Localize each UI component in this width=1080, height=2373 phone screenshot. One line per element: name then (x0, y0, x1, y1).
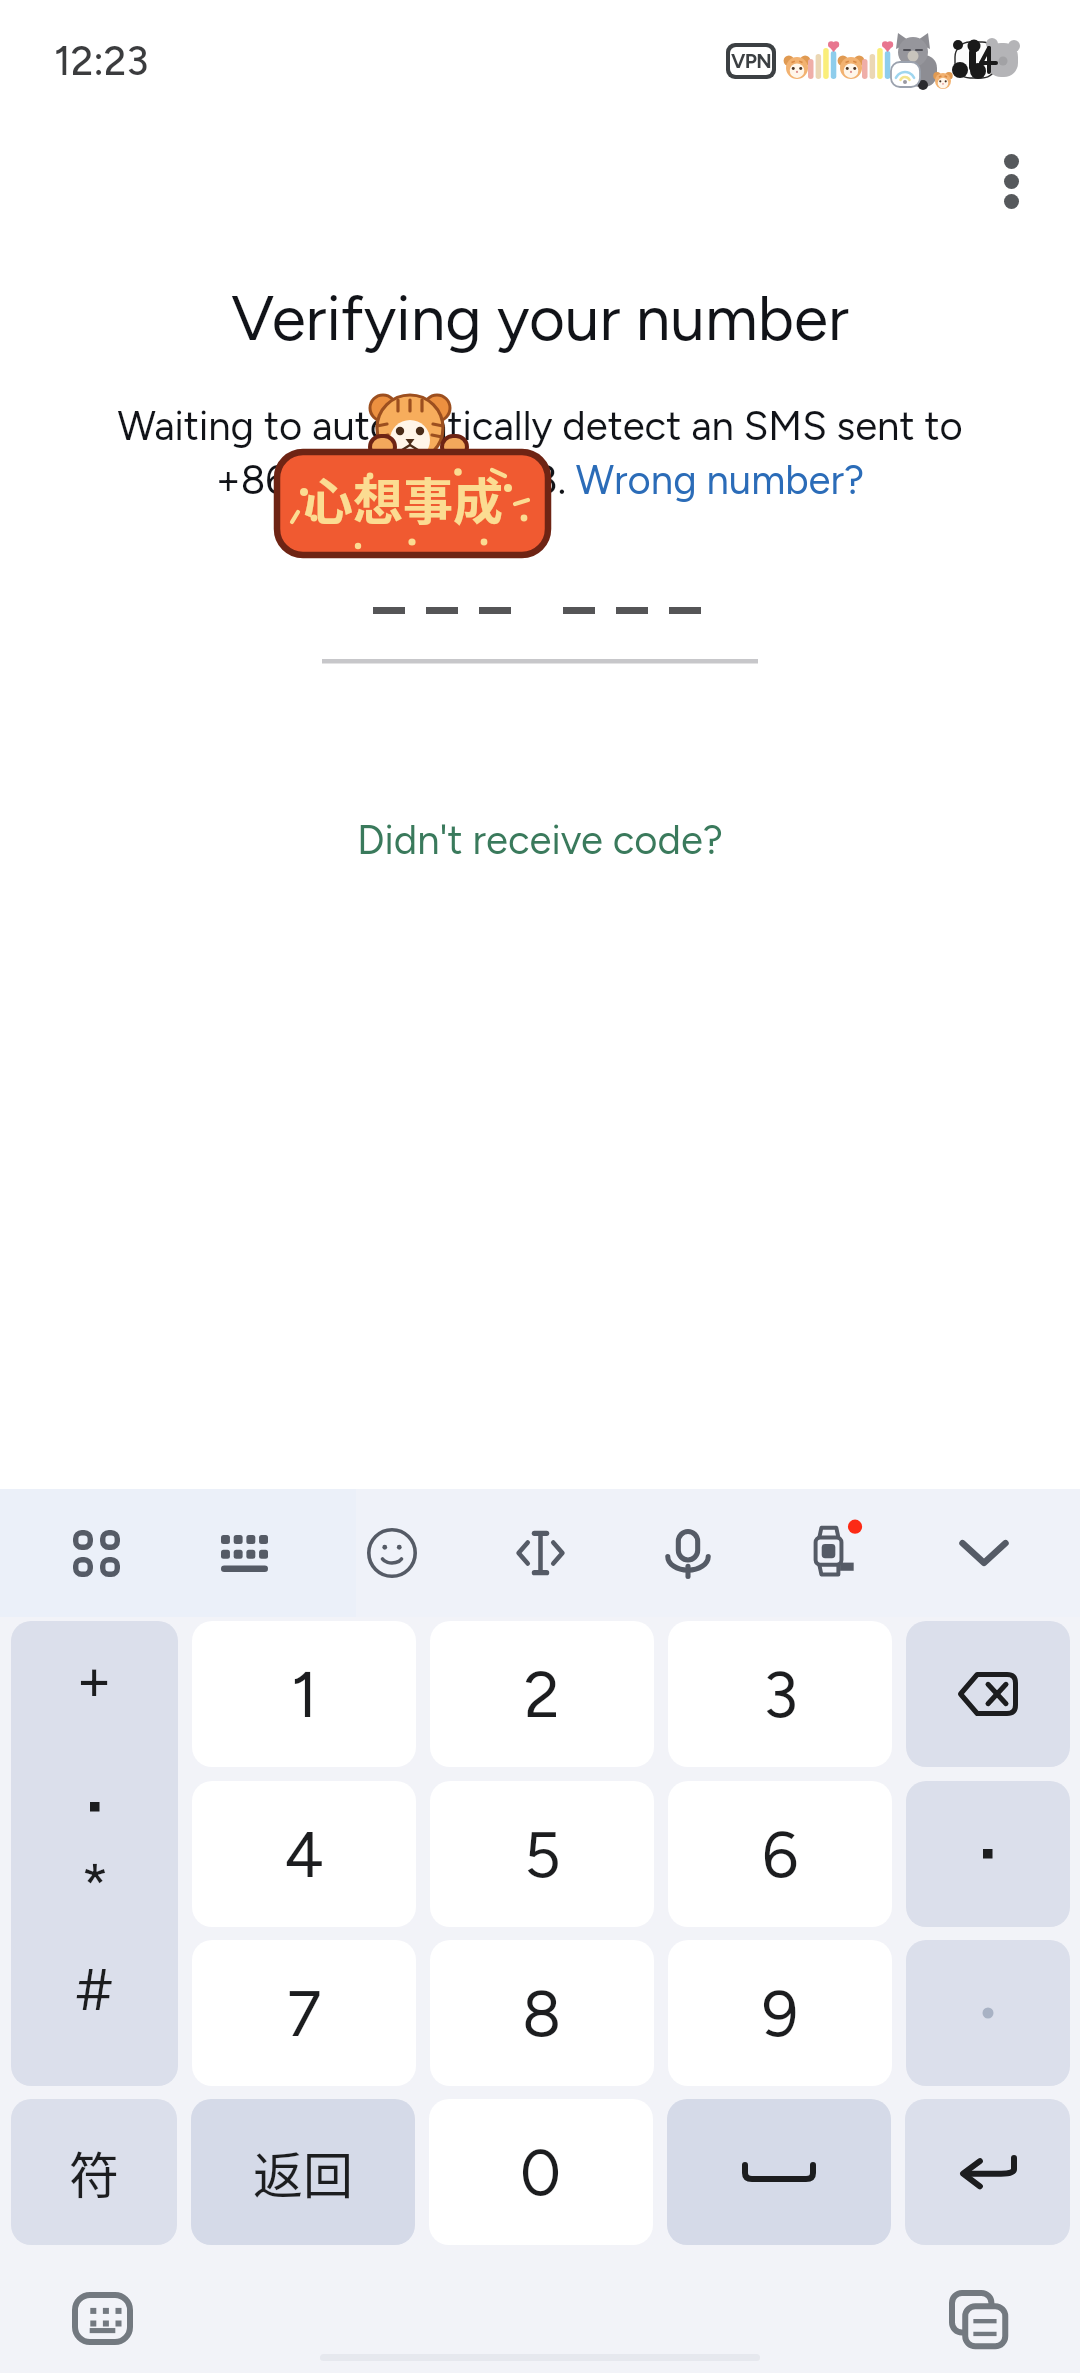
button[interactable]: Enter (905, 2099, 1070, 2245)
button[interactable]: 符 (11, 2099, 177, 2245)
button[interactable]: 1 (192, 1621, 416, 1767)
staticText: 4 (284, 1816, 324, 1893)
button[interactable]: 7 (192, 1940, 416, 2086)
staticText: 9 (762, 1975, 799, 2052)
button[interactable]: 4 (192, 1781, 416, 1927)
staticText: 5 (524, 1816, 561, 1893)
button[interactable]: Switch input method (72, 2292, 133, 2345)
button[interactable]: Period (906, 1781, 1070, 1927)
staticText: + (76, 1645, 113, 1715)
staticText: Didn't receive code? (357, 816, 724, 864)
button[interactable]: 9 (668, 1940, 892, 2086)
staticText: 心想事成 (303, 462, 503, 534)
staticText: 返回 (253, 2136, 353, 2208)
staticText: * (81, 1851, 109, 1921)
button[interactable]: More options (956, 126, 1066, 236)
staticText: 1 (291, 1656, 318, 1733)
staticText: 6 (762, 1816, 799, 1893)
staticText: 0 (520, 2134, 562, 2211)
staticText: 2 (524, 1656, 560, 1733)
button[interactable]: Voice input (614, 1489, 762, 1617)
button[interactable]: Emoji (318, 1489, 466, 1617)
button[interactable]: More (906, 1940, 1070, 2086)
staticText: 8 (522, 1975, 562, 2052)
button[interactable]: 8 (430, 1940, 654, 2086)
staticText: 12:23 (54, 37, 149, 85)
button[interactable]: Clipboard (949, 2290, 1007, 2346)
button[interactable]: Watch ad (762, 1489, 910, 1617)
staticText: 3 (763, 1656, 798, 1733)
button[interactable]: 2 (430, 1621, 654, 1767)
staticText: 7 (287, 1975, 322, 2052)
button[interactable]: Keyboard layout (170, 1489, 318, 1617)
button[interactable]: 6 (668, 1781, 892, 1927)
staticText: VPN (731, 49, 772, 73)
staticText: # (76, 1955, 113, 2025)
button[interactable]: Move cursor (466, 1489, 614, 1617)
other: VPN active (730, 47, 772, 75)
button[interactable]: 5 (430, 1781, 654, 1927)
button[interactable]: 3 (668, 1621, 892, 1767)
button[interactable]: Apps (22, 1489, 170, 1617)
staticText: Verifying your number (0, 281, 1080, 355)
button[interactable]: Didn't receive code? (343, 807, 738, 873)
button[interactable]: 返回 (191, 2099, 415, 2245)
staticText: 符 (69, 2136, 119, 2208)
button[interactable]: Backspace (906, 1621, 1070, 1767)
button[interactable]: Space (667, 2099, 891, 2245)
button[interactable]: Symbols (11, 1621, 178, 2086)
button[interactable]: 0 (429, 2099, 653, 2245)
button[interactable]: Hide keyboard (910, 1489, 1058, 1617)
staticText: Waiting to automatically detect an SMS s… (40, 402, 1040, 504)
